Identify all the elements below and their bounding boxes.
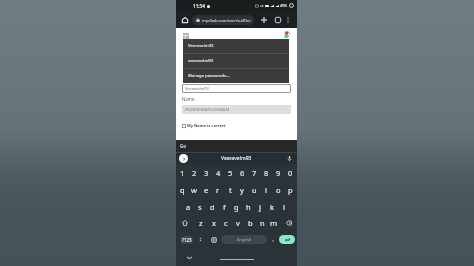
staticText: Name (182, 96, 195, 102)
staticText: 8 (264, 168, 269, 178)
button[interactable]: Manage passwords... (183, 69, 289, 83)
staticText: u (252, 185, 257, 195)
button[interactable]: r (212, 181, 224, 198)
button[interactable]: w (188, 181, 200, 198)
button[interactable]: e (200, 181, 212, 198)
button[interactable]: z (194, 215, 207, 231)
button[interactable]: a (183, 198, 194, 215)
staticText: 2 (192, 168, 197, 178)
button[interactable]: g (230, 198, 242, 215)
staticText: Veeravelm93 (185, 86, 209, 91)
staticText: Go (180, 143, 187, 149)
button[interactable]: English (221, 235, 267, 244)
button[interactable]: n (256, 215, 268, 231)
staticText: 11:34 (193, 3, 205, 9)
button[interactable]: Veeravelm93 (183, 39, 289, 53)
button[interactable]: h (242, 198, 254, 215)
button[interactable]: o (272, 181, 284, 198)
button[interactable]: k (266, 198, 278, 215)
staticText: b (248, 218, 253, 228)
staticText: l (283, 202, 285, 212)
button[interactable]: veeravelm93 (183, 54, 289, 68)
staticText: Veeravelm93 (221, 155, 252, 162)
button[interactable]: v (232, 215, 244, 231)
staticText: r (216, 185, 220, 195)
button[interactable]: i (260, 181, 272, 198)
staticText: a (186, 202, 191, 212)
button[interactable]: 1 (177, 164, 188, 181)
staticText: 7 (252, 168, 257, 178)
button[interactable]: Veeravelm93 (182, 84, 291, 93)
staticText: x (212, 218, 216, 228)
button[interactable]: New tab (258, 14, 269, 25)
staticText: veeravelm93 (188, 58, 214, 64)
staticText: Veeravelm93 (188, 43, 214, 49)
staticText: 49% (280, 3, 288, 8)
staticText: g (234, 202, 239, 212)
button[interactable]: Enter (279, 235, 295, 244)
button[interactable]: c (220, 215, 232, 231)
button[interactable]: s (194, 198, 206, 215)
button[interactable]: Voice input (286, 155, 293, 162)
button[interactable]: Backspace (280, 215, 297, 231)
button[interactable]: 0 (284, 164, 296, 181)
button[interactable]: q (177, 181, 188, 198)
button[interactable]: p (284, 181, 296, 198)
staticText: v (236, 218, 240, 228)
staticText: t (229, 185, 232, 195)
button[interactable]: 8 (260, 164, 272, 181)
button[interactable]: Shift (176, 215, 194, 231)
button[interactable]: mpcSwb.com/user/suifDec (192, 15, 254, 25)
staticText: h (246, 202, 251, 212)
staticText: 6 (240, 168, 245, 178)
staticText: q (180, 185, 185, 195)
button[interactable]: Tabs (272, 14, 283, 25)
staticText: i (265, 185, 267, 195)
button[interactable]: t (224, 181, 236, 198)
button[interactable]: Change language (209, 235, 218, 244)
staticText: ?123 (182, 237, 192, 243)
staticText: w (191, 185, 197, 195)
button[interactable]: j (254, 198, 266, 215)
staticText: n (260, 218, 265, 228)
staticText: 9 (276, 168, 281, 178)
button[interactable] (196, 231, 205, 248)
button[interactable]: ?123 (180, 236, 193, 244)
other: Hide keyboard (187, 255, 192, 260)
staticText: e (204, 185, 209, 195)
staticText: f (223, 202, 226, 212)
button[interactable]: 5 (224, 164, 236, 181)
staticText: d (210, 202, 215, 212)
button[interactable]: 9 (272, 164, 284, 181)
button[interactable]: Expand suggestions (179, 154, 188, 163)
button[interactable]: 2 (188, 164, 200, 181)
staticText: My Name is correct (187, 123, 226, 128)
button[interactable]: 6 (236, 164, 248, 181)
button[interactable]: y (236, 181, 248, 198)
button[interactable] (269, 231, 276, 248)
button[interactable]: More options (283, 15, 293, 25)
staticText: y (240, 185, 244, 195)
button[interactable]: Home (179, 14, 191, 26)
button[interactable]: 7 (248, 164, 260, 181)
button[interactable]: 4 (212, 164, 224, 181)
button[interactable]: u (248, 181, 260, 198)
staticText: c (224, 218, 228, 228)
button[interactable]: l (278, 198, 290, 215)
staticText: z (199, 218, 203, 228)
staticText: 3 (204, 168, 209, 178)
staticText: PROVIDEVRAVELSUNNA M (185, 107, 230, 112)
button[interactable]: 3 (200, 164, 212, 181)
staticText: s (198, 202, 202, 212)
button[interactable]: m (268, 215, 280, 231)
button[interactable]: x (207, 215, 220, 231)
staticText: 4 (216, 168, 221, 178)
staticText: mpcSwb.com/user/suifDec (202, 18, 251, 23)
staticText: 0 (288, 168, 293, 178)
button[interactable]: d (206, 198, 218, 215)
button[interactable]: b (244, 215, 256, 231)
button[interactable]: f (218, 198, 230, 215)
button[interactable]: My Name is correct (182, 123, 226, 128)
staticText: p (288, 185, 293, 195)
staticText: 5 (228, 168, 233, 178)
